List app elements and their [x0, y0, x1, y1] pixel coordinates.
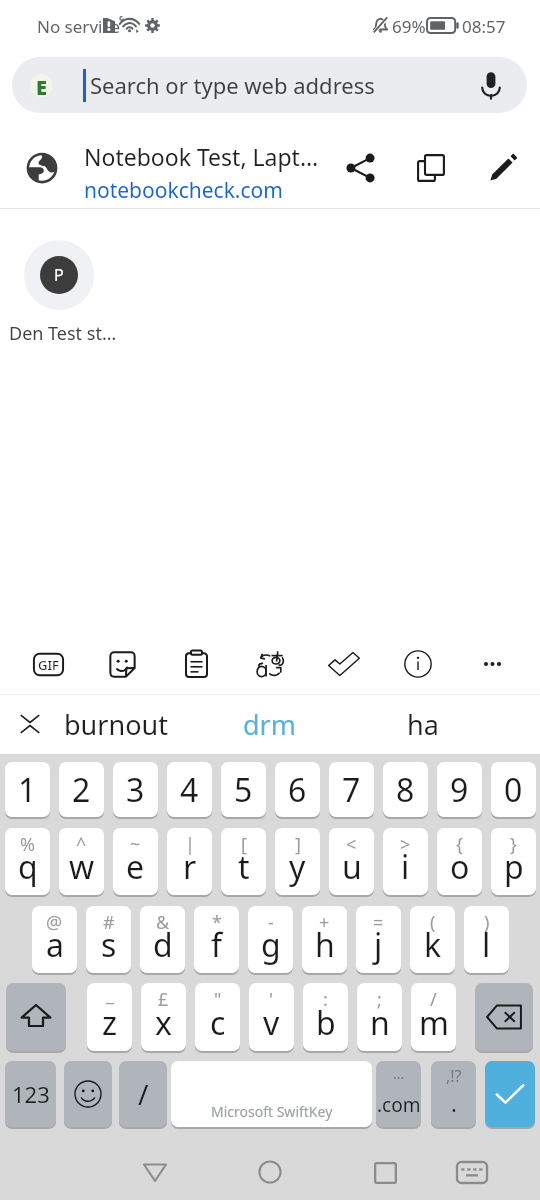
button[interactable]: <: [329, 828, 374, 895]
button[interactable]: ': [249, 983, 294, 1051]
staticText: ': [269, 987, 274, 1012]
button[interactable]: Switch keyboard: [442, 1143, 502, 1200]
staticText: ): [484, 910, 490, 935]
staticText: ···: [393, 1068, 405, 1087]
button[interactable]: Proofread: [312, 632, 376, 696]
button[interactable]: (: [410, 906, 455, 973]
button[interactable]: *: [194, 906, 239, 973]
button[interactable]: Space: [171, 1061, 372, 1127]
button[interactable]: [: [221, 828, 266, 895]
button[interactable]: Share: [334, 141, 387, 194]
button[interactable]: 1: [5, 762, 50, 817]
button[interactable]: ···: [376, 1061, 421, 1127]
button[interactable]: GIF: [16, 632, 80, 696]
button[interactable]: -: [248, 906, 293, 973]
button[interactable]: Backspace: [475, 983, 533, 1051]
button[interactable]: burnout: [40, 695, 192, 753]
staticText: z: [102, 1001, 118, 1045]
staticText: c: [210, 1001, 226, 1045]
staticText: .: [451, 1088, 457, 1118]
button[interactable]: E: [12, 57, 527, 113]
staticText: %: [20, 832, 35, 857]
staticText: <: [346, 832, 357, 857]
button[interactable]: ,!?: [431, 1061, 476, 1127]
button[interactable]: ^: [59, 828, 104, 895]
button[interactable]: ;: [357, 983, 402, 1051]
button[interactable]: /: [411, 983, 456, 1051]
staticText: k: [424, 923, 442, 967]
button[interactable]: :: [303, 983, 348, 1051]
button[interactable]: ]: [275, 828, 320, 895]
button[interactable]: >: [383, 828, 428, 895]
button[interactable]: 7: [329, 762, 374, 817]
staticText: ha: [407, 706, 439, 743]
button[interactable]: Voice search: [469, 63, 513, 107]
button[interactable]: drm: [194, 695, 346, 753]
staticText: i: [401, 845, 410, 889]
staticText: 08:57: [462, 15, 506, 38]
button[interactable]: More: [460, 632, 524, 696]
staticText: 7: [342, 768, 361, 812]
button[interactable]: }: [491, 828, 536, 895]
button[interactable]: 123: [5, 1061, 56, 1127]
button[interactable]: Stickers: [90, 632, 154, 696]
button[interactable]: ": [195, 983, 240, 1051]
staticText: @: [46, 910, 63, 935]
staticText: l: [482, 923, 491, 967]
staticText: Den Test st…: [9, 321, 117, 346]
button[interactable]: {: [437, 828, 482, 895]
staticText: 1: [18, 768, 37, 812]
button[interactable]: Expand predictions: [6, 700, 54, 748]
button[interactable]: 9: [437, 762, 482, 817]
staticText: ^: [76, 832, 87, 857]
staticText: |: [185, 832, 195, 857]
staticText: -: [268, 910, 274, 935]
button[interactable]: _: [87, 983, 132, 1051]
staticText: &: [156, 910, 170, 935]
button[interactable]: Edit: [476, 141, 529, 194]
button[interactable]: £: [141, 983, 186, 1051]
staticText: w: [69, 845, 95, 889]
button[interactable]: 0: [491, 762, 536, 817]
button[interactable]: Home: [240, 1143, 300, 1200]
button[interactable]: Shift: [6, 983, 66, 1051]
button[interactable]: ha: [347, 695, 499, 753]
button[interactable]: |: [167, 828, 212, 895]
staticText: 9: [450, 768, 469, 812]
staticText: {: [456, 832, 463, 857]
button[interactable]: 5: [221, 762, 266, 817]
staticText: j: [374, 923, 383, 967]
button[interactable]: 8: [383, 762, 428, 817]
staticText: f: [211, 923, 223, 967]
button[interactable]: %: [5, 828, 50, 895]
staticText: d: [153, 923, 173, 967]
button[interactable]: Info: [386, 632, 450, 696]
button[interactable]: 3: [113, 762, 158, 817]
button[interactable]: #: [86, 906, 131, 973]
button[interactable]: 6: [275, 762, 320, 817]
staticText: r: [183, 845, 197, 889]
button[interactable]: 4: [167, 762, 212, 817]
staticText: 6: [288, 768, 307, 812]
button[interactable]: Translate: [238, 632, 302, 696]
button[interactable]: Clipboard: [164, 632, 228, 696]
button[interactable]: Copy tab: [404, 141, 457, 194]
button[interactable]: /: [119, 1061, 167, 1127]
staticText: b: [316, 1001, 336, 1045]
button[interactable]: Recents: [355, 1143, 415, 1200]
staticText: drm: [243, 706, 297, 743]
button[interactable]: 2: [59, 762, 104, 817]
button[interactable]: P: [24, 240, 94, 310]
button[interactable]: ): [464, 906, 509, 973]
button[interactable]: Back: [125, 1143, 185, 1200]
staticText: 0: [504, 768, 523, 812]
button[interactable]: +: [302, 906, 347, 973]
button[interactable]: &: [140, 906, 185, 973]
staticText: GIF: [38, 656, 59, 674]
staticText: g: [261, 923, 281, 967]
button[interactable]: =: [356, 906, 401, 973]
button[interactable]: Emoji: [64, 1061, 112, 1127]
button[interactable]: Enter: [485, 1061, 535, 1127]
button[interactable]: @: [32, 906, 77, 973]
button[interactable]: ~: [113, 828, 158, 895]
